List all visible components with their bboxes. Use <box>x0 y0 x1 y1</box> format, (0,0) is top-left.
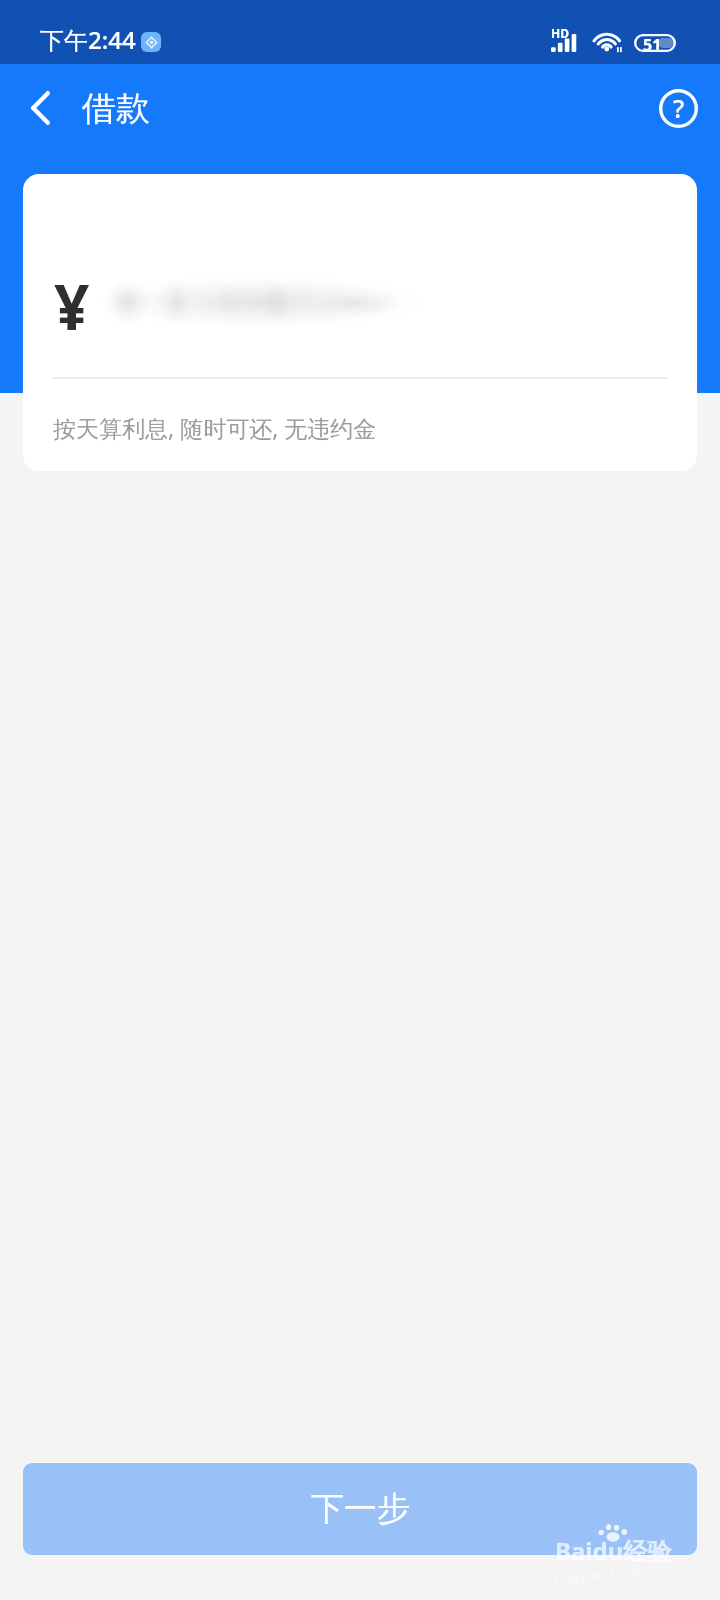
staticText: 下午2:44 <box>40 23 136 56</box>
button[interactable]: 下一步 <box>23 1463 697 1555</box>
button[interactable]: Help <box>642 72 715 145</box>
staticText: 下一步 <box>311 1488 410 1530</box>
staticText: 借款 <box>82 87 150 130</box>
staticText: Baidu经验 <box>555 1534 672 1567</box>
button[interactable]: Back <box>4 72 76 144</box>
staticText: ? <box>673 91 685 125</box>
staticText: HD <box>551 25 569 41</box>
staticText: ¥ <box>54 264 90 348</box>
button[interactable]: 借款金额输入框 <box>53 224 667 377</box>
staticText: 51 <box>643 34 662 52</box>
staticText: 按天算利息, 随时可还, 无违约金 <box>53 412 377 443</box>
